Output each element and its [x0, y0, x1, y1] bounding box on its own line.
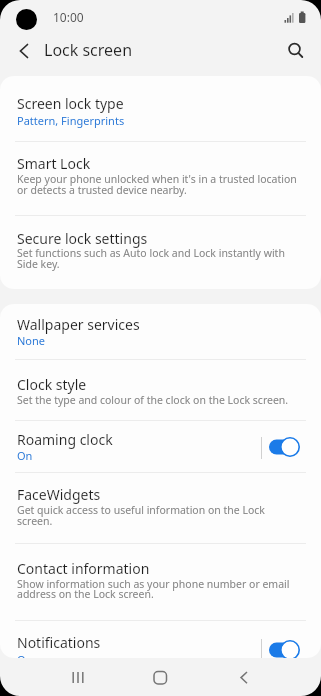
- staticText: Keep your phone unlocked when it's in a …: [17, 172, 297, 186]
- button[interactable]: [0, 620, 321, 658]
- staticText: Screen lock type: [17, 94, 124, 113]
- staticText: Contact information: [17, 559, 150, 578]
- staticText: Smart Lock: [17, 154, 91, 173]
- staticText: Get quick access to useful information o…: [17, 503, 265, 517]
- staticText: Clock style: [17, 375, 87, 394]
- button[interactable]: [0, 141, 321, 215]
- staticText: On: [17, 448, 33, 463]
- staticText: Wallpaper services: [17, 315, 140, 334]
- staticText: Show information such as your phone numb…: [17, 577, 290, 591]
- staticText: None: [17, 333, 46, 348]
- button[interactable]: [8, 36, 38, 66]
- button[interactable]: [58, 662, 98, 692]
- staticText: Set the type and colour of the clock on …: [17, 393, 289, 407]
- staticText: screen.: [17, 514, 53, 528]
- staticText: 10:00: [53, 9, 84, 25]
- button[interactable]: [140, 662, 180, 692]
- staticText: On: [17, 652, 33, 658]
- staticText: Lock screen: [44, 39, 133, 61]
- staticText: or detects a trusted device nearby.: [17, 183, 187, 197]
- staticText: Set functions such as Auto lock and Lock…: [17, 246, 285, 260]
- staticText: address on the Lock screen.: [17, 587, 154, 601]
- staticText: FaceWidgets: [17, 485, 101, 504]
- staticText: Pattern, Fingerprints: [17, 113, 125, 128]
- staticText: Roaming clock: [17, 430, 113, 449]
- button[interactable]: [280, 35, 310, 65]
- button[interactable]: [0, 543, 321, 620]
- button[interactable]: [226, 662, 266, 692]
- button[interactable]: [0, 359, 321, 420]
- staticText: Notifications: [17, 633, 101, 652]
- button[interactable]: [0, 76, 321, 141]
- button[interactable]: [0, 472, 321, 543]
- button[interactable]: [0, 215, 321, 289]
- button[interactable]: [0, 420, 321, 472]
- staticText: Secure lock settings: [17, 229, 148, 248]
- staticText: Side key.: [17, 257, 60, 271]
- button[interactable]: [0, 304, 321, 359]
